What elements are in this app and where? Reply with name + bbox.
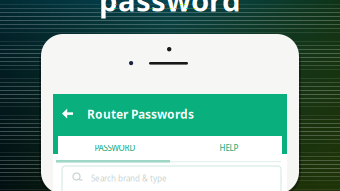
staticText: password bbox=[99, 0, 241, 19]
button[interactable]: HELP bbox=[172, 136, 286, 160]
button[interactable]: Router Passwords bbox=[87, 94, 247, 134]
button[interactable]: Search brand & type bbox=[62, 166, 281, 191]
staticText: Router Passwords bbox=[87, 106, 194, 122]
button[interactable]: PASSWORD bbox=[58, 136, 172, 160]
staticText: Search brand & type bbox=[91, 173, 167, 184]
staticText: PASSWORD bbox=[94, 143, 135, 153]
staticText: HELP bbox=[219, 143, 238, 153]
button[interactable]: Back bbox=[53, 94, 83, 134]
